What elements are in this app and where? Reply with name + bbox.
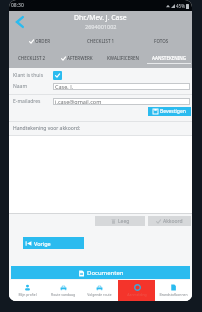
button[interactable]: ORDER [9,33,70,50]
button[interactable]: Klant is thuis [53,71,62,80]
staticText: Vorige [34,240,51,247]
staticText: KWALIFICEREN [107,55,140,61]
staticText: Mijn profiel [18,292,37,297]
button[interactable]: Vorige [23,237,84,249]
button[interactable]: Back [13,15,27,29]
staticText: Route vandaag [51,292,75,297]
staticText: CHECKLIST 2 [18,55,46,61]
staticText: Naam [13,83,53,90]
staticText: 08:30 [11,2,24,9]
button[interactable]: AFTERWERK [54,50,100,67]
staticText: AANSTEKENING [152,55,187,61]
staticText: Documenten [87,269,124,277]
button[interactable]: KWALIFICEREN [100,50,146,67]
button[interactable]: Bevestigen [148,107,191,116]
button[interactable]: Documenten [11,266,190,279]
button[interactable]: CHECKLIST 2 [9,50,54,67]
button[interactable]: Akkoord [148,216,191,226]
staticText: Brandstofbonnen [159,292,188,297]
button[interactable]: Case, J. [53,83,190,90]
staticText: Leeg [118,218,130,225]
button[interactable]: CHECKLIST 1 [70,33,131,50]
button[interactable]: Brandstofbonnen [155,280,192,301]
button[interactable]: Volgende route [81,280,118,301]
staticText: Case, J. [55,83,74,90]
button[interactable]: AANSTEKENING [146,50,192,67]
button[interactable]: Leeg [95,216,145,226]
staticText: FOTOS [154,38,169,44]
staticText: Aanmelding [127,292,147,297]
button[interactable]: Mijn profiel [9,280,45,301]
staticText: 2694001002 [85,23,117,30]
button[interactable]: Route vandaag [45,280,81,301]
staticText: Klant is thuis [13,72,53,79]
staticText: j.case@gmail.com [55,98,102,105]
staticText: Bevestigen [160,108,186,115]
staticText: Handtekening voor akkoord: [13,125,81,132]
staticText: 45% [176,3,185,9]
staticText: Volgende route [87,292,112,297]
staticText: CHECKLIST 1 [87,38,115,44]
staticText: Dhr./Mev. J. Case [74,13,127,22]
button[interactable]: Aanmelding [118,280,155,301]
staticText: Akkoord [163,218,183,225]
staticText: E-mailadres [13,98,53,105]
staticText: ORDER [35,38,51,44]
button[interactable]: FOTOS [131,33,192,50]
staticText: AFTERWERK [67,55,93,61]
button[interactable]: j.case@gmail.com [53,98,190,105]
